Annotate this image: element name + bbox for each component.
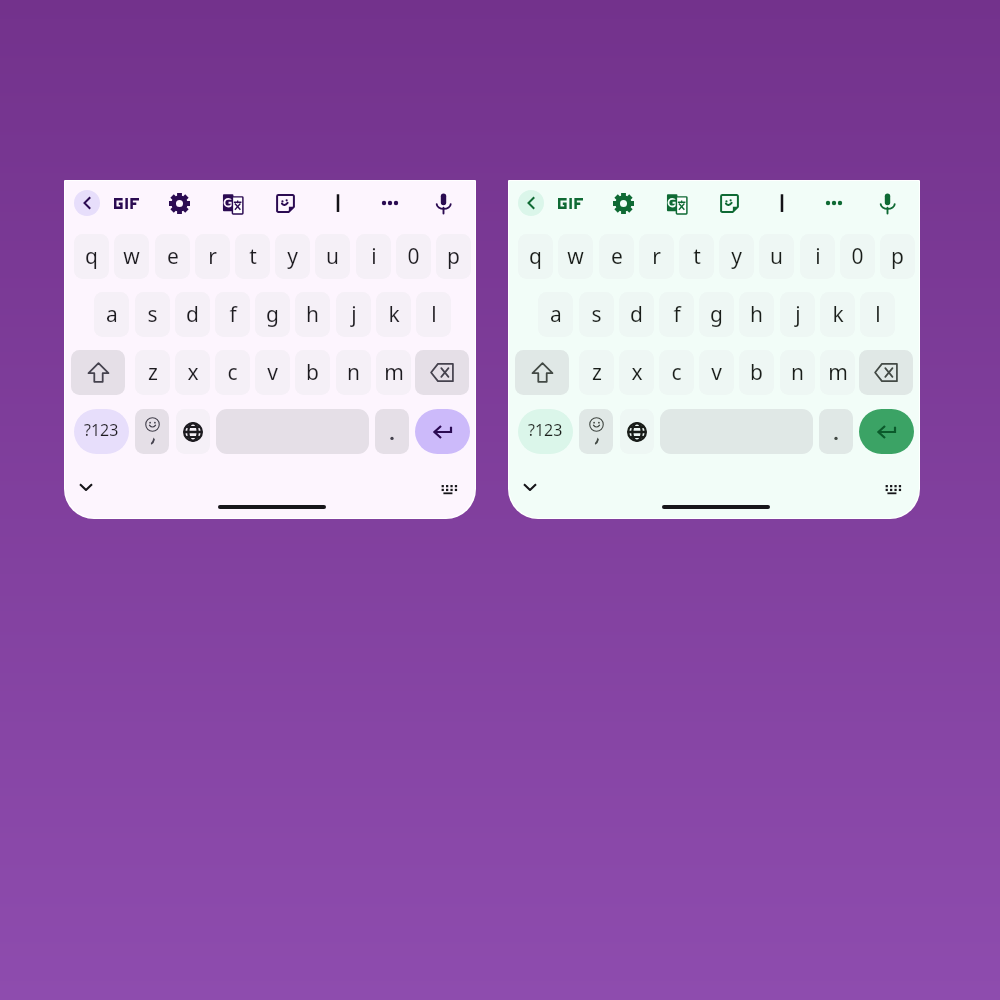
- button[interactable]: Change language: [620, 409, 654, 454]
- button[interactable]: Stickers: [272, 190, 298, 216]
- button[interactable]: Enter: [859, 409, 914, 454]
- button[interactable]: l: [860, 292, 895, 337]
- button[interactable]: h: [739, 292, 774, 337]
- button[interactable]: c: [659, 350, 694, 395]
- button[interactable]: q: [74, 234, 109, 279]
- button[interactable]: l: [416, 292, 451, 337]
- button[interactable]: f: [215, 292, 250, 337]
- button[interactable]: Enter: [415, 409, 470, 454]
- staticText: n: [347, 358, 360, 387]
- button[interactable]: Back: [518, 190, 544, 216]
- button[interactable]: Emoji: [135, 409, 169, 454]
- button[interactable]: ?123: [518, 409, 573, 454]
- button[interactable]: Backspace: [859, 350, 913, 395]
- staticText: y: [731, 242, 742, 271]
- staticText: s: [147, 300, 158, 329]
- button[interactable]: a: [538, 292, 573, 337]
- button[interactable]: k: [376, 292, 411, 337]
- button[interactable]: p: [436, 234, 471, 279]
- button[interactable]: j: [780, 292, 815, 337]
- button[interactable]: b: [295, 350, 330, 395]
- button[interactable]: i: [356, 234, 391, 279]
- staticText: t: [693, 242, 701, 271]
- staticText: c: [671, 358, 682, 387]
- button[interactable]: t: [235, 234, 270, 279]
- button[interactable]: j: [336, 292, 371, 337]
- button[interactable]: Shift: [515, 350, 569, 395]
- button[interactable]: m: [376, 350, 411, 395]
- button[interactable]: g: [699, 292, 734, 337]
- button[interactable]: q: [518, 234, 553, 279]
- button[interactable]: y: [275, 234, 310, 279]
- button[interactable]: Back: [74, 190, 100, 216]
- button[interactable]: More options: [821, 190, 847, 216]
- button[interactable]: n: [336, 350, 371, 395]
- button[interactable]: d: [619, 292, 654, 337]
- button[interactable]: g: [255, 292, 290, 337]
- button[interactable]: n: [780, 350, 815, 395]
- button[interactable]: GIF: [108, 188, 144, 218]
- staticText: k: [832, 300, 844, 329]
- button[interactable]: z: [579, 350, 614, 395]
- button[interactable]: r: [195, 234, 230, 279]
- button[interactable]: Emoji: [579, 409, 613, 454]
- button[interactable]: Hide keyboard: [73, 475, 99, 501]
- button[interactable]: Translate: [219, 190, 245, 216]
- button[interactable]: Backspace: [415, 350, 469, 395]
- button[interactable]: Translate: [663, 190, 689, 216]
- button[interactable]: Voice input: [430, 190, 456, 216]
- button[interactable]: f: [659, 292, 694, 337]
- button[interactable]: More options: [377, 190, 403, 216]
- button[interactable]: w: [558, 234, 593, 279]
- button[interactable]: Stickers: [716, 190, 742, 216]
- button[interactable]: 0: [396, 234, 431, 279]
- button[interactable]: k: [820, 292, 855, 337]
- button[interactable]: r: [639, 234, 674, 279]
- button[interactable]: Settings: [610, 190, 636, 216]
- button[interactable]: w: [114, 234, 149, 279]
- button[interactable]: h: [295, 292, 330, 337]
- button[interactable]: Shift: [71, 350, 125, 395]
- button[interactable]: b: [739, 350, 774, 395]
- button[interactable]: m: [820, 350, 855, 395]
- button[interactable]: Period: [375, 409, 409, 454]
- staticText: b: [750, 358, 763, 387]
- button[interactable]: Period: [819, 409, 853, 454]
- button[interactable]: v: [699, 350, 734, 395]
- button[interactable]: y: [719, 234, 754, 279]
- button[interactable]: GIF: [552, 188, 588, 218]
- button[interactable]: x: [175, 350, 210, 395]
- button[interactable]: Switch keyboard layout: [435, 475, 461, 501]
- button[interactable]: Change language: [176, 409, 210, 454]
- button[interactable]: Hide keyboard: [517, 475, 543, 501]
- button[interactable]: d: [175, 292, 210, 337]
- button[interactable]: x: [619, 350, 654, 395]
- button[interactable]: t: [679, 234, 714, 279]
- staticText: f: [229, 300, 237, 329]
- button[interactable]: Switch keyboard layout: [879, 475, 905, 501]
- button[interactable]: Voice input: [874, 190, 900, 216]
- button[interactable]: Text editing: [325, 190, 351, 216]
- staticText: y: [287, 242, 298, 271]
- staticText: a: [550, 300, 562, 329]
- button[interactable]: v: [255, 350, 290, 395]
- button[interactable]: p: [880, 234, 915, 279]
- staticText: d: [630, 300, 643, 329]
- button[interactable]: s: [135, 292, 170, 337]
- button[interactable]: 0: [840, 234, 875, 279]
- button[interactable]: a: [94, 292, 129, 337]
- button[interactable]: u: [315, 234, 350, 279]
- button[interactable]: i: [800, 234, 835, 279]
- button[interactable]: u: [759, 234, 794, 279]
- button[interactable]: Settings: [166, 190, 192, 216]
- button[interactable]: s: [579, 292, 614, 337]
- button[interactable]: Text editing: [769, 190, 795, 216]
- button[interactable]: e: [599, 234, 634, 279]
- button[interactable]: e: [155, 234, 190, 279]
- button[interactable]: c: [215, 350, 250, 395]
- button[interactable]: ?123: [74, 409, 129, 454]
- button[interactable]: z: [135, 350, 170, 395]
- staticText: a: [106, 300, 118, 329]
